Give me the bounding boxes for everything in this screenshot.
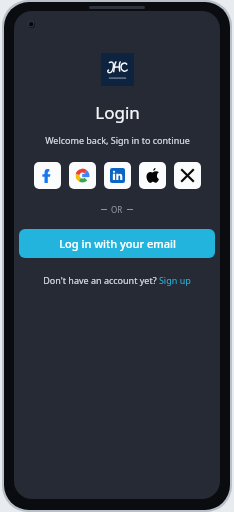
staticText: OR	[111, 204, 123, 215]
staticText: Login	[95, 101, 140, 124]
button[interactable]: Don't have an account yet? Sign up	[43, 274, 191, 286]
button[interactable]: Sign in with LinkedIn	[104, 162, 131, 189]
button[interactable]: Sign in with Apple	[139, 162, 166, 189]
button[interactable]: JHC logo	[101, 53, 134, 86]
button[interactable]: Sign in with X	[174, 162, 201, 189]
button[interactable]: Sign in with Facebook	[34, 162, 61, 189]
button[interactable]: Log in with your email	[19, 229, 215, 258]
button[interactable]: Sign in with Google	[69, 162, 96, 189]
staticText: Log in with your email	[59, 236, 176, 251]
staticText: Welcome back, Sign in to continue	[45, 134, 190, 146]
